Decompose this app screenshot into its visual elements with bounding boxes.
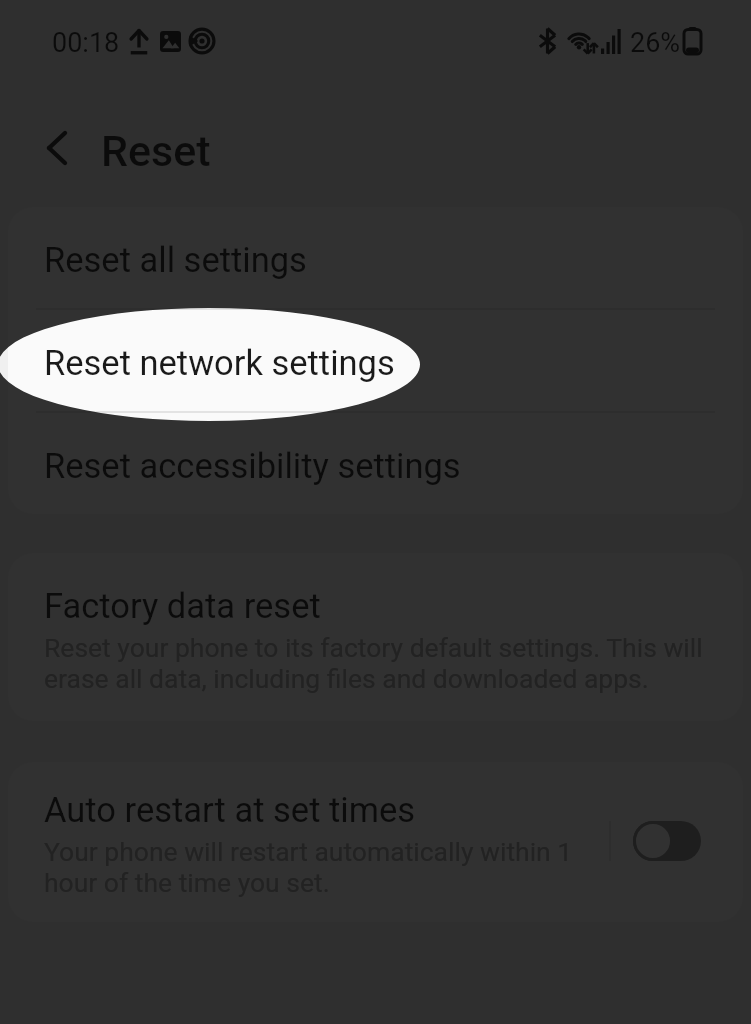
staticText: Reset all settings: [44, 240, 307, 280]
button[interactable]: Reset all settings: [8, 207, 743, 308]
button[interactable]: Reset network settings: [8, 310, 743, 411]
staticText: Reset: [101, 126, 211, 176]
staticText: 26%: [630, 27, 681, 59]
staticText: Reset network settings: [44, 343, 395, 383]
button[interactable]: Back: [23, 114, 91, 182]
staticText: Reset accessibility settings: [44, 446, 461, 486]
button[interactable]: Reset accessibility settings: [8, 413, 743, 514]
button[interactable]: Factory data reset: [8, 553, 743, 721]
staticText: Factory data reset: [44, 586, 321, 626]
staticText: Your phone will restart automatically wi…: [44, 836, 595, 898]
button[interactable]: Auto restart toggle: [633, 821, 701, 861]
staticText: Reset your phone to its factory default …: [44, 632, 705, 694]
staticText: Auto restart at set times: [44, 790, 416, 830]
button[interactable]: Auto restart at set times: [8, 762, 743, 922]
staticText: 00:18: [52, 27, 120, 59]
